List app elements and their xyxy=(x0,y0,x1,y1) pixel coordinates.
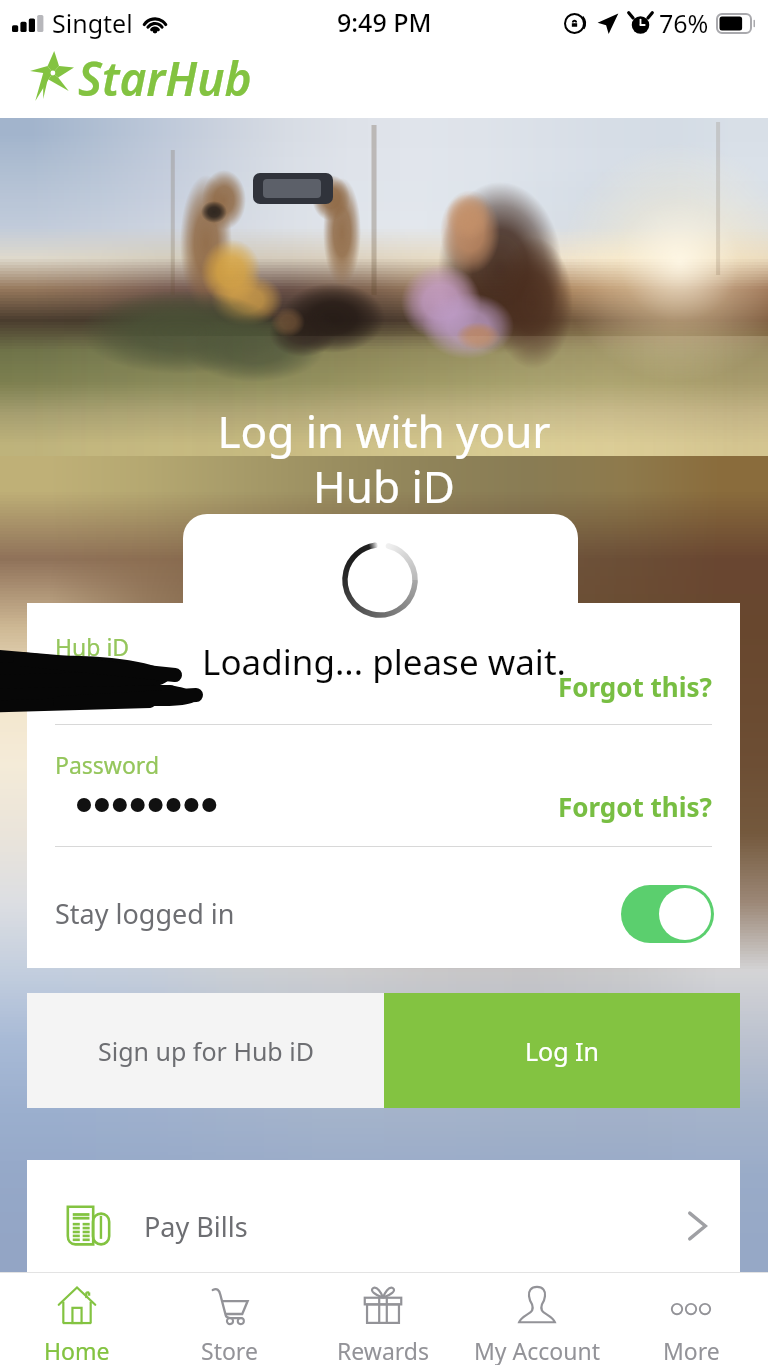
staticText: Pay Bills xyxy=(144,1208,248,1245)
staticText: StarHub xyxy=(78,47,252,105)
staticText: Password xyxy=(55,749,160,780)
button[interactable]: Pay Bills xyxy=(27,1160,740,1273)
staticText: Forgot this? xyxy=(557,789,712,824)
staticText: Log In xyxy=(525,1034,600,1068)
staticText: Loading... please wait. xyxy=(0,638,768,686)
staticText: More xyxy=(663,1335,720,1365)
button[interactable]: Forgot this? xyxy=(527,665,712,707)
button[interactable]: Store xyxy=(153,1273,306,1365)
staticText: Sign up for Hub iD xyxy=(98,1034,314,1068)
staticText: Stay logged in xyxy=(55,895,235,932)
staticText: Log in with your xyxy=(0,401,768,461)
button[interactable]: More xyxy=(614,1273,768,1365)
button[interactable]: Rewards xyxy=(306,1273,460,1365)
staticText: Singtel xyxy=(52,6,133,40)
staticText: Hub iD xyxy=(0,456,768,516)
button[interactable]: Forgot this? xyxy=(527,785,712,827)
button[interactable]: Log In xyxy=(384,993,740,1108)
button[interactable]: StarHub xyxy=(30,47,252,105)
staticText: Home xyxy=(44,1335,110,1365)
button[interactable]: Stay logged in xyxy=(621,885,714,943)
staticText: 76% xyxy=(659,6,709,40)
button[interactable]: Stay logged in xyxy=(27,853,740,974)
staticText: 9:49 PM xyxy=(337,5,432,39)
button[interactable]: Sign up for Hub iD xyxy=(27,993,384,1108)
staticText: My Account xyxy=(474,1335,600,1365)
button[interactable]: My Account xyxy=(460,1273,614,1365)
staticText: Hub iD xyxy=(55,631,130,662)
staticText: Rewards xyxy=(337,1335,429,1365)
staticText: Store xyxy=(201,1335,258,1365)
staticText: Forgot this? xyxy=(557,669,712,704)
button[interactable]: Home xyxy=(0,1273,153,1365)
